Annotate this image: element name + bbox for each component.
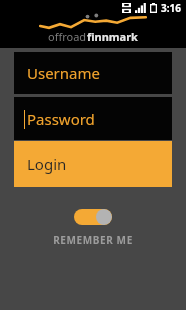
staticText: Login xyxy=(27,154,67,174)
button[interactable]: Username xyxy=(14,52,172,94)
staticText: REMEMBER ME xyxy=(53,233,133,247)
button[interactable]: Remember me toggle, on xyxy=(74,209,112,225)
staticText: Username xyxy=(27,63,100,83)
staticText: finnmark xyxy=(87,29,138,44)
staticText: Password xyxy=(27,109,95,129)
staticText: 3:16 xyxy=(161,1,181,15)
staticText: offroad xyxy=(48,29,87,44)
button[interactable]: Password xyxy=(14,97,172,140)
button[interactable]: Login xyxy=(14,141,172,187)
